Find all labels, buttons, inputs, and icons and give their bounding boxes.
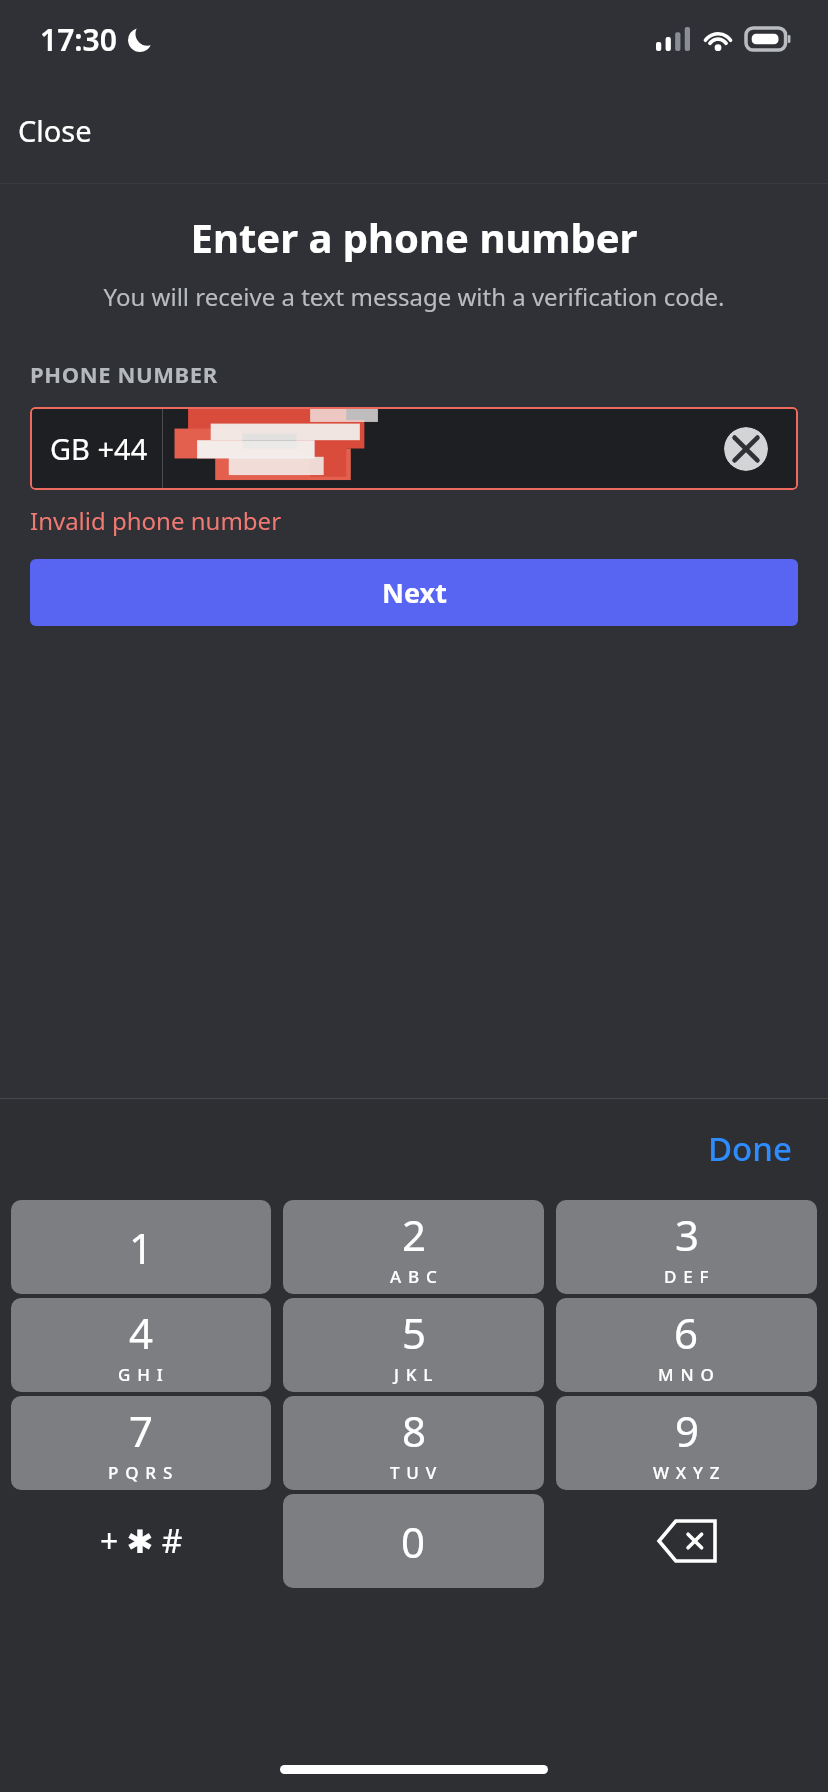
button[interactable]: Next: [30, 559, 798, 626]
staticText: P Q R S: [108, 1461, 174, 1484]
button[interactable]: Backspace: [556, 1492, 817, 1590]
button[interactable]: Clear text: [724, 427, 768, 471]
staticText: 6: [674, 1304, 699, 1361]
button[interactable]: 9: [556, 1396, 817, 1490]
button[interactable]: 0: [283, 1494, 544, 1588]
staticText: 3: [675, 1206, 700, 1263]
staticText: G H I: [118, 1363, 164, 1386]
staticText: T U V: [390, 1461, 438, 1484]
button[interactable]: GB +44: [30, 407, 798, 490]
staticText: A B C: [390, 1265, 438, 1288]
button[interactable]: 2: [283, 1200, 544, 1294]
staticText: W X Y Z: [653, 1461, 721, 1484]
staticText: 7: [129, 1402, 154, 1459]
staticText: GB +44: [50, 429, 148, 468]
staticText: + ✱ #: [100, 1519, 183, 1563]
staticText: 1: [129, 1219, 154, 1276]
button[interactable]: 6: [556, 1298, 817, 1392]
staticText: Invalid phone number: [30, 504, 282, 537]
staticText: 4: [129, 1304, 154, 1361]
button[interactable]: Symbols: [11, 1492, 271, 1590]
staticText: 9: [675, 1402, 700, 1459]
staticText: Close: [18, 111, 92, 150]
staticText: 8: [402, 1402, 427, 1459]
staticText: D E F: [664, 1265, 710, 1288]
button[interactable]: 1: [11, 1200, 271, 1294]
staticText: Enter a phone number: [0, 210, 828, 264]
button[interactable]: Done: [694, 1118, 806, 1179]
button[interactable]: 5: [283, 1298, 544, 1392]
staticText: Next: [382, 574, 447, 611]
staticText: 0: [401, 1513, 426, 1570]
button[interactable]: Close: [0, 101, 110, 160]
button[interactable]: 7: [11, 1396, 271, 1490]
staticText: You will receive a text message with a v…: [24, 280, 804, 313]
staticText: Done: [708, 1126, 792, 1171]
staticText: PHONE NUMBER: [30, 359, 218, 389]
button[interactable]: 8: [283, 1396, 544, 1490]
staticText: J K L: [394, 1363, 434, 1386]
staticText: 2: [402, 1206, 427, 1263]
button[interactable]: 4: [11, 1298, 271, 1392]
staticText: M N O: [658, 1363, 715, 1386]
button[interactable]: 3: [556, 1200, 817, 1294]
staticText: 17:30: [40, 19, 117, 60]
staticText: 5: [402, 1304, 427, 1361]
